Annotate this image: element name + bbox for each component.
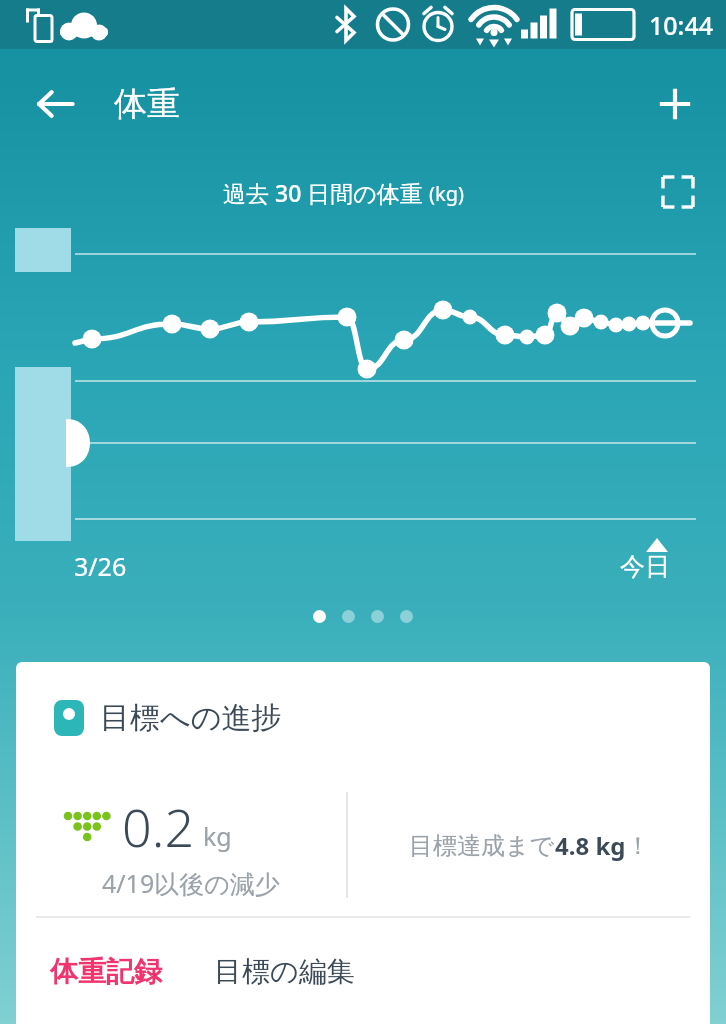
staticText: 3/26 [74, 549, 127, 583]
staticText: 過去 30 日間の体重 [223, 177, 429, 208]
staticText: kg [203, 819, 232, 853]
staticText: (kg) [429, 180, 464, 207]
staticText: 4.8 kg [555, 829, 626, 862]
staticText: 体重 [114, 83, 180, 125]
staticText: 目標への進捗 [100, 699, 282, 737]
staticText: 4/19以後の減少 [102, 866, 280, 900]
staticText: 今日 [620, 551, 670, 582]
staticText: 体重記録 [50, 954, 162, 989]
button[interactable]: Add weight [642, 71, 708, 137]
button[interactable]: Back [22, 71, 88, 137]
button[interactable]: 体重記録 [38, 942, 174, 1001]
button[interactable]: Fullscreen [652, 166, 704, 218]
staticText: 10:44 [649, 8, 714, 42]
button[interactable]: 目標の編集 [202, 942, 367, 1001]
staticText: 0.2 [122, 791, 195, 862]
staticText: 目標達成まで [409, 831, 555, 861]
staticText: 目標の編集 [214, 954, 355, 989]
staticText: ！ [626, 831, 650, 861]
